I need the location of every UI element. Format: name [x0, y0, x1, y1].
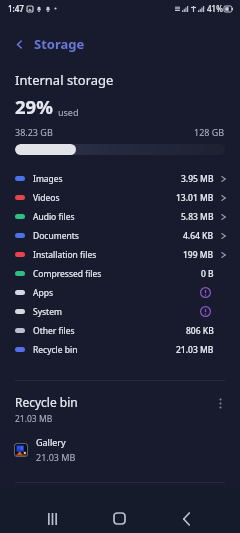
- staticText: 199 MB: [183, 249, 214, 261]
- button[interactable]: System: [0, 302, 240, 321]
- staticText: 0 B: [201, 268, 214, 280]
- staticText: Installation files: [33, 249, 97, 261]
- staticText: Other files: [33, 325, 75, 337]
- staticText: 4.64 KB: [183, 230, 214, 242]
- button[interactable]: Installation files: [0, 245, 240, 264]
- button[interactable]: Other files: [0, 321, 240, 340]
- button[interactable]: More options: [211, 394, 229, 412]
- staticText: Internal storage: [15, 71, 114, 89]
- button[interactable]: Compressed files: [0, 264, 240, 283]
- staticText: Gallery: [36, 436, 66, 448]
- staticText: 128 GB: [194, 126, 225, 138]
- button[interactable]: Audio files: [0, 207, 240, 226]
- staticText: used: [58, 106, 79, 118]
- button[interactable]: Documents: [0, 226, 240, 245]
- staticText: 806 KB: [186, 325, 214, 337]
- staticText: 3.95 MB: [181, 173, 214, 185]
- staticText: 1:47: [8, 3, 24, 14]
- staticText: 29%: [15, 94, 53, 119]
- staticText: 38.23 GB: [15, 126, 53, 138]
- staticText: Recycle bin: [33, 344, 78, 356]
- staticText: 13.01 MB: [176, 192, 214, 204]
- staticText: Videos: [33, 192, 60, 204]
- staticText: 21.03 MB: [176, 344, 214, 356]
- staticText: Images: [33, 173, 63, 185]
- button[interactable]: Images: [0, 169, 240, 188]
- staticText: Storage: [34, 35, 85, 53]
- button[interactable]: Gallery: [0, 434, 240, 465]
- staticText: Audio files: [33, 211, 75, 223]
- staticText: Compressed files: [33, 268, 102, 280]
- button[interactable]: Videos: [0, 188, 240, 207]
- staticText: 41%: [207, 3, 223, 14]
- button[interactable]: Apps: [0, 283, 240, 302]
- button[interactable]: Home: [102, 501, 137, 533]
- staticText: 21.03 MB: [15, 413, 53, 425]
- staticText: 21.03 MB: [36, 451, 76, 463]
- staticText: 5.83 MB: [181, 211, 214, 223]
- button[interactable]: Navigate up: [6, 31, 32, 57]
- staticText: Recycle bin: [15, 394, 78, 410]
- staticText: Documents: [33, 230, 79, 242]
- staticText: System: [33, 306, 62, 318]
- button[interactable]: Recent apps: [35, 501, 70, 533]
- staticText: Apps: [33, 287, 53, 299]
- button[interactable]: Back: [169, 501, 204, 533]
- button[interactable]: Recycle bin: [0, 340, 240, 359]
